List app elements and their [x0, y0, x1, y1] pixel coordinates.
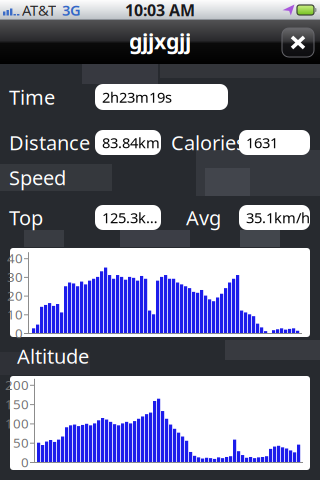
button[interactable]: 83.84km: [95, 130, 161, 155]
staticText: Time: [9, 84, 55, 110]
staticText: Calories: [171, 129, 246, 156]
staticText: 83.84km: [102, 133, 160, 152]
staticText: 150: [5, 395, 29, 413]
button[interactable]: Close: [282, 28, 314, 57]
staticText: AT&T: [22, 0, 56, 20]
staticText: 20: [7, 287, 23, 304]
staticText: 200: [5, 376, 29, 394]
staticText: 35.1km/h: [246, 208, 310, 227]
staticText: 2h23m19s: [102, 87, 172, 107]
staticText: 30: [7, 268, 23, 286]
staticText: 10: [7, 305, 23, 323]
staticText: 125.3k…: [102, 208, 158, 227]
staticText: Avg: [186, 204, 221, 231]
staticText: 10:03 AM: [125, 0, 195, 21]
staticText: 100: [5, 414, 29, 432]
staticText: Top: [9, 204, 43, 231]
staticText: 3G: [62, 0, 81, 20]
staticText: 0: [21, 453, 29, 471]
staticText: Distance: [9, 129, 90, 156]
staticText: Speed: [9, 164, 66, 191]
button[interactable]: 125.3k…: [95, 205, 161, 230]
button[interactable]: 2h23m19s: [95, 84, 228, 110]
button[interactable]: 1631: [239, 130, 310, 155]
button[interactable]: 35.1km/h: [239, 205, 310, 230]
staticText: gjjxgjj: [129, 27, 191, 55]
staticText: Altitude: [17, 343, 89, 369]
staticText: 50: [13, 434, 29, 451]
staticText: 1631: [246, 133, 278, 152]
staticText: 0: [15, 324, 23, 342]
staticText: 40: [7, 249, 23, 267]
